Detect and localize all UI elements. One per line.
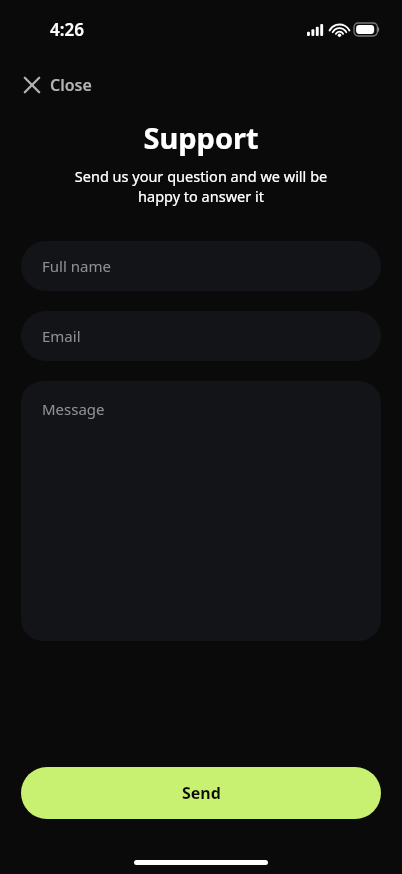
staticText: Send: [182, 782, 221, 804]
staticText: 4:26: [50, 18, 84, 41]
staticText: Send us your question and we will be hap…: [24, 166, 378, 206]
staticText: Close: [50, 74, 92, 96]
staticText: Support: [0, 118, 402, 157]
button[interactable]: Full name: [21, 241, 381, 291]
button[interactable]: Message: [21, 381, 381, 641]
staticText: Message: [42, 399, 105, 419]
button[interactable]: Send: [21, 767, 381, 819]
button[interactable]: Email: [21, 311, 381, 361]
staticText: Full name: [42, 256, 111, 276]
button[interactable]: Close: [16, 68, 99, 102]
staticText: Email: [42, 326, 81, 346]
